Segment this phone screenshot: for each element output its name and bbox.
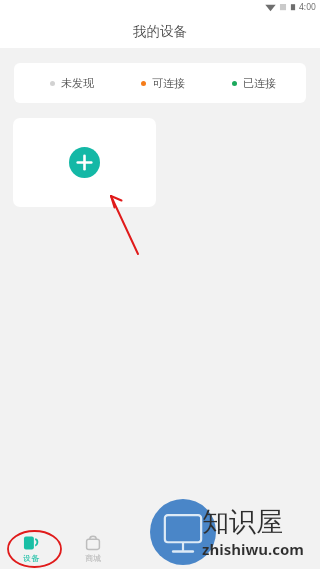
staticText: 我的设备 [133, 23, 187, 40]
button[interactable]: Add device [13, 118, 156, 207]
button[interactable]: 商城 [62, 528, 124, 569]
staticText: 可连接 [152, 76, 185, 90]
staticText: 4:00 [299, 1, 316, 13]
staticText: 商城 [85, 553, 101, 563]
staticText: zhishiwu.com [202, 539, 304, 559]
button[interactable]: 设备 [0, 528, 62, 569]
staticText: 未发现 [61, 76, 94, 90]
staticText: 设备 [23, 553, 39, 563]
button[interactable]: 未发现 [14, 63, 306, 103]
staticText: 已连接 [243, 76, 276, 90]
staticText: 知识屋 [202, 505, 283, 539]
